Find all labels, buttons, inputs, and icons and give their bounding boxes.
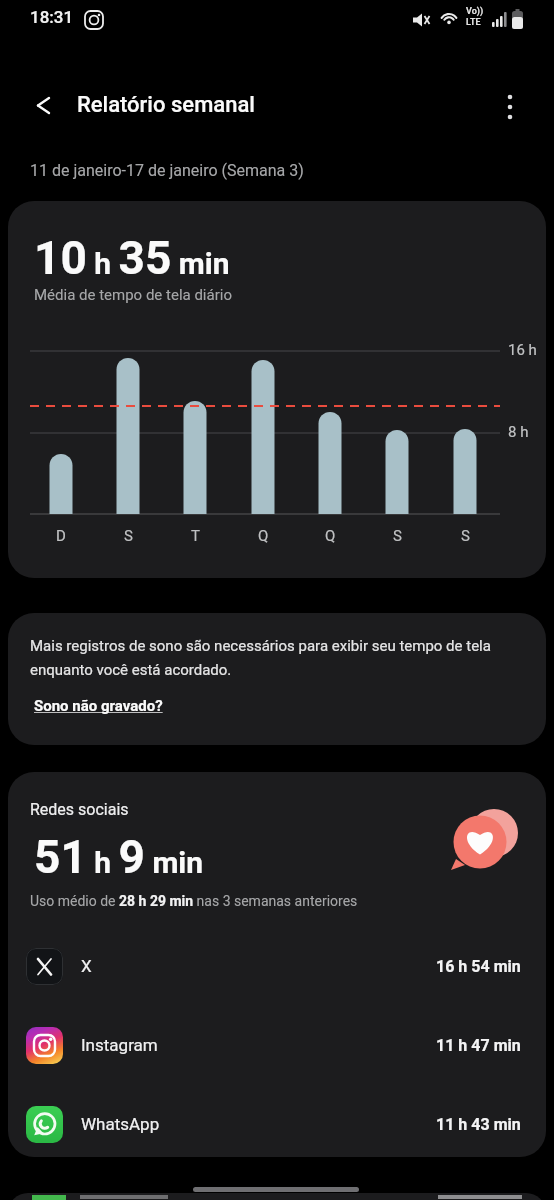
staticText: Instagram xyxy=(81,1035,158,1055)
staticText: 51 h 9 min xyxy=(34,830,204,884)
button[interactable]: Sono não gravado? xyxy=(30,693,167,719)
button[interactable] xyxy=(22,85,66,129)
staticText: S xyxy=(393,527,402,545)
staticText: 11 h 47 min xyxy=(436,1036,521,1055)
staticText: 16 h xyxy=(508,341,537,359)
staticText: 16 h 54 min xyxy=(436,957,521,976)
staticText: Sono não gravado? xyxy=(34,697,163,715)
staticText: Q xyxy=(258,527,269,545)
staticText: LTE xyxy=(466,17,481,28)
staticText: Mais registros de sono são necessários p… xyxy=(30,637,491,679)
button[interactable]: X xyxy=(8,946,546,986)
staticText: WhatsApp xyxy=(81,1114,160,1134)
staticText: 10 h 35 min xyxy=(34,231,230,285)
staticText: 18:31 xyxy=(30,7,74,27)
staticText: 8 h xyxy=(508,423,529,441)
staticText: 11 h 43 min xyxy=(436,1115,521,1134)
staticText: Redes sociais xyxy=(30,800,129,819)
button[interactable]: WhatsApp xyxy=(8,1104,546,1144)
staticText: Média de tempo de tela diário xyxy=(34,286,232,304)
staticText: S xyxy=(461,527,470,545)
staticText: Q xyxy=(325,527,336,545)
staticText: T xyxy=(191,527,200,545)
staticText: D xyxy=(56,527,66,545)
staticText: Relatório semanal xyxy=(77,92,255,118)
button[interactable] xyxy=(488,85,532,129)
staticText: 11 de janeiro-17 de janeiro (Semana 3) xyxy=(30,161,304,180)
staticText: S xyxy=(124,527,133,545)
staticText: Vo)) xyxy=(466,6,484,17)
button[interactable]: Instagram xyxy=(8,1025,546,1065)
staticText: Uso médio de 28 h 29 min nas 3 semanas a… xyxy=(30,893,358,909)
staticText: X xyxy=(81,956,92,976)
